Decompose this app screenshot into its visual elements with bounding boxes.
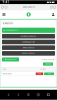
button[interactable]: Export CSV (2, 57, 19, 61)
button[interactable]: View Standards (2, 45, 55, 50)
staticText: Title (3, 68, 6, 70)
button[interactable]: Add New (43, 62, 53, 66)
staticText: Browse Standards (21, 35, 36, 37)
staticText: Edit (48, 73, 50, 75)
button[interactable]: Reload (1, 6, 4, 8)
button[interactable]: Add New Record (2, 28, 55, 33)
button[interactable]: Menu (2, 13, 6, 16)
staticText: 9:41 (2, 0, 9, 4)
staticText: www.example.com (23, 6, 35, 8)
staticText: Add New (45, 63, 51, 65)
button[interactable]: Submit a Question (2, 40, 55, 44)
button[interactable]: Account (52, 13, 55, 16)
staticText: Actions (40, 68, 46, 70)
button[interactable]: Share (50, 6, 52, 8)
staticText: Request Update (22, 52, 35, 54)
button[interactable]: Share (27, 93, 29, 96)
button[interactable]: Forward (17, 93, 19, 96)
staticText: Submit a Question (22, 41, 35, 43)
staticText: View Standards (22, 47, 34, 49)
button[interactable]: Bookmarks (37, 93, 39, 96)
button[interactable]: Tabs (47, 93, 50, 96)
button[interactable]: Request Update (2, 51, 55, 56)
staticText: Add New Record (6, 29, 18, 31)
button[interactable]: Edit (44, 72, 54, 75)
button[interactable]: Privacy report (5, 6, 7, 8)
staticText: Record 001 (3, 73, 12, 75)
staticText: showing 1 of 1 entries (41, 59, 55, 60)
staticText: Export CSV (7, 59, 16, 60)
button[interactable]: Browse Standards (2, 34, 55, 39)
staticText: All Records (5, 22, 13, 24)
button[interactable]: Delete (36, 72, 43, 75)
staticText: Delete (37, 73, 41, 75)
button[interactable]: Back (7, 93, 10, 96)
button[interactable]: Tabs (53, 6, 56, 8)
